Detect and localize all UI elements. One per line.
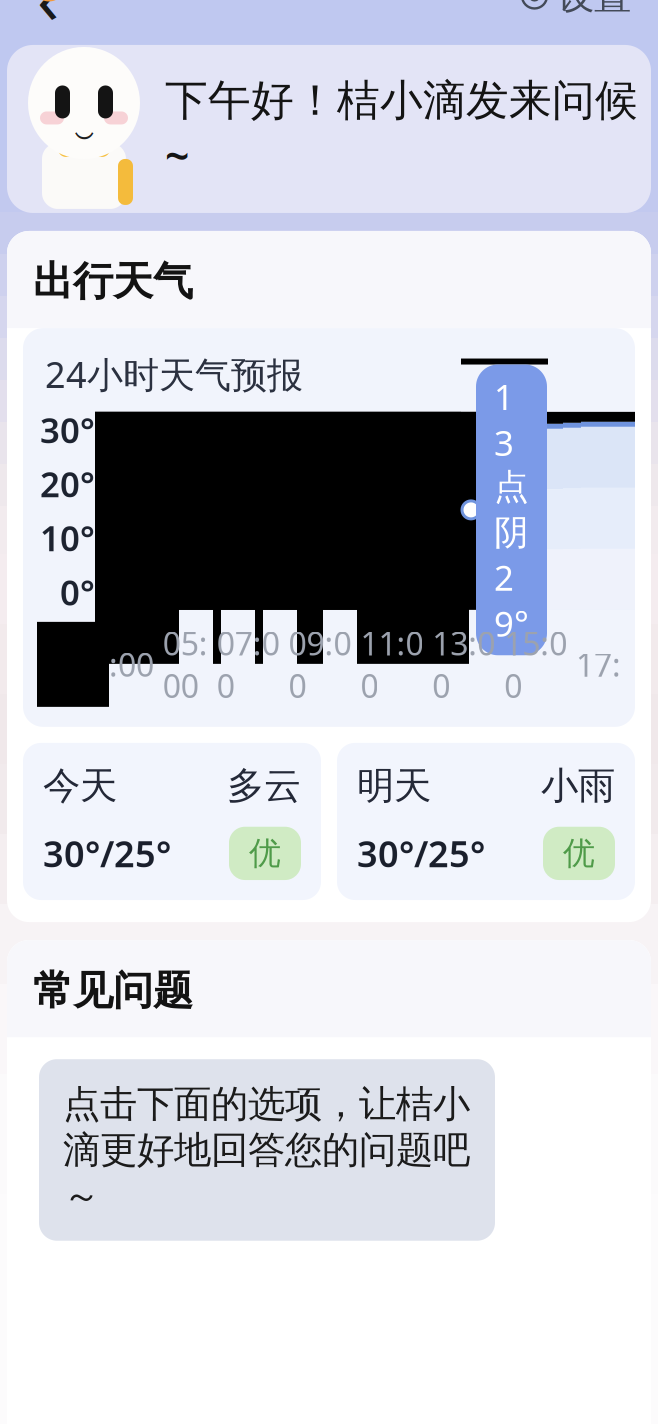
- staticText: 设置: [557, 0, 631, 19]
- staticText: 24小时天气预报: [45, 350, 303, 398]
- staticText: 05:00: [163, 622, 208, 707]
- staticText: 0°: [60, 569, 95, 615]
- staticText: 30°/25°: [357, 829, 485, 877]
- staticText: 优: [563, 834, 595, 873]
- staticText: 15:00: [504, 622, 567, 707]
- button[interactable]: 设置: [513, 0, 639, 27]
- staticText: 小雨: [541, 763, 615, 809]
- staticText: :00: [109, 643, 154, 686]
- staticText: 07:00: [217, 622, 280, 707]
- staticText: 明天: [357, 763, 431, 809]
- staticText: 13:00: [432, 622, 495, 707]
- staticText: 点击下面的选项，让桔小滴更好地回答您的问题吧～: [63, 1081, 470, 1219]
- staticText: 17:: [576, 643, 621, 686]
- staticText: 30°: [40, 407, 95, 453]
- staticText: 多云: [227, 763, 301, 809]
- staticText: 13点 阴 29°: [494, 373, 529, 646]
- button[interactable]: 今天: [23, 743, 321, 900]
- staticText: 09:00: [289, 622, 352, 707]
- button[interactable]: 返回: [19, 0, 77, 27]
- staticText: 30°/25°: [43, 829, 171, 877]
- staticText: 下午好！桔小滴发来问候~: [165, 74, 638, 183]
- staticText: 优: [249, 834, 281, 873]
- staticText: 20°: [40, 461, 95, 507]
- staticText: 10°: [40, 515, 95, 561]
- staticText: ‹: [37, 0, 59, 44]
- staticText: 出行天气: [33, 257, 193, 306]
- staticText: ‿: [74, 98, 93, 140]
- staticText: 11:00: [360, 622, 423, 707]
- staticText: 今天: [43, 763, 117, 809]
- staticText: 常见问题: [33, 966, 193, 1015]
- button[interactable]: 明天: [337, 743, 635, 900]
